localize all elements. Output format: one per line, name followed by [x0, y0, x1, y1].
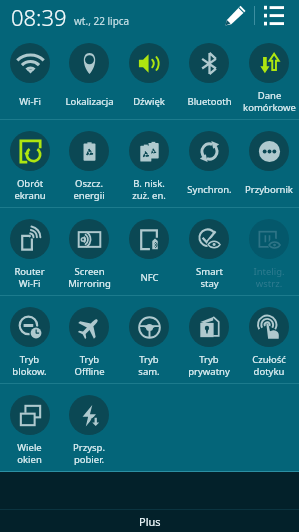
button[interactable]: Dźwięk	[119, 32, 179, 120]
staticText: Plus	[139, 514, 161, 529]
staticText: Lokalizacja	[65, 95, 114, 108]
staticText: B. nisk. zuż. en.	[132, 177, 166, 202]
staticText: Tryb blokow.	[12, 353, 47, 378]
staticText: NFC	[140, 271, 159, 284]
staticText: wt., 22 lipca	[74, 14, 130, 28]
staticText: Synchron.	[187, 183, 232, 196]
button[interactable]: Router Wi-Fi	[0, 208, 59, 296]
button[interactable]: Wi-Fi	[0, 32, 59, 120]
button[interactable]: Synchron.	[179, 120, 239, 208]
staticText: Screen Mirroring	[68, 265, 111, 290]
button[interactable]: Tryb blokow.	[0, 296, 59, 384]
button[interactable]: Tryb Offline	[59, 296, 119, 384]
button[interactable]: Przybornik	[239, 120, 299, 208]
button[interactable]: B. nisk. zuż. en.	[119, 120, 179, 208]
staticText: Router Wi-Fi	[14, 265, 45, 290]
staticText: 08:39	[11, 2, 67, 32]
staticText: Dźwięk	[133, 95, 165, 108]
button[interactable]: Wiele okien	[0, 384, 59, 472]
button[interactable]: Dane komórkowe	[239, 32, 299, 120]
button[interactable]: Tryb sam.	[119, 296, 179, 384]
button[interactable]: Tryb prywatny	[179, 296, 239, 384]
staticText: Smart stay	[196, 265, 223, 290]
staticText: Wiele okien	[17, 441, 42, 466]
staticText: Obrót ekranu	[14, 177, 46, 202]
staticText: Tryb prywatny	[188, 353, 230, 378]
staticText: Intelig. wstrz.	[253, 265, 285, 290]
button[interactable]: Przysp. pobier.	[59, 384, 119, 472]
staticText: Przysp. pobier.	[73, 441, 105, 466]
staticText: Bluetooth	[187, 95, 232, 108]
button[interactable]: Edit quick settings	[221, 1, 249, 29]
button[interactable]: Notification list	[260, 1, 288, 29]
button[interactable]: Oszcz. energii	[59, 120, 119, 208]
button[interactable]: Bluetooth	[179, 32, 239, 120]
staticText: Dane komórkowe	[243, 89, 296, 114]
staticText: Oszcz. energii	[73, 177, 105, 202]
staticText: Czułość dotyku	[252, 353, 286, 378]
staticText: Tryb sam.	[138, 353, 160, 378]
button[interactable]: Screen Mirroring	[59, 208, 119, 296]
staticText: Wi-Fi	[19, 95, 41, 108]
button[interactable]: Intelig. wstrz.	[239, 208, 299, 296]
staticText: Przybornik	[245, 183, 293, 196]
button[interactable]: Obrót ekranu	[0, 120, 59, 208]
button[interactable]: Czułość dotyku	[239, 296, 299, 384]
button[interactable]: NFC	[119, 208, 179, 296]
staticText: Tryb Offline	[74, 353, 105, 378]
button[interactable]: Smart stay	[179, 208, 239, 296]
button[interactable]: Lokalizacja	[59, 32, 119, 120]
